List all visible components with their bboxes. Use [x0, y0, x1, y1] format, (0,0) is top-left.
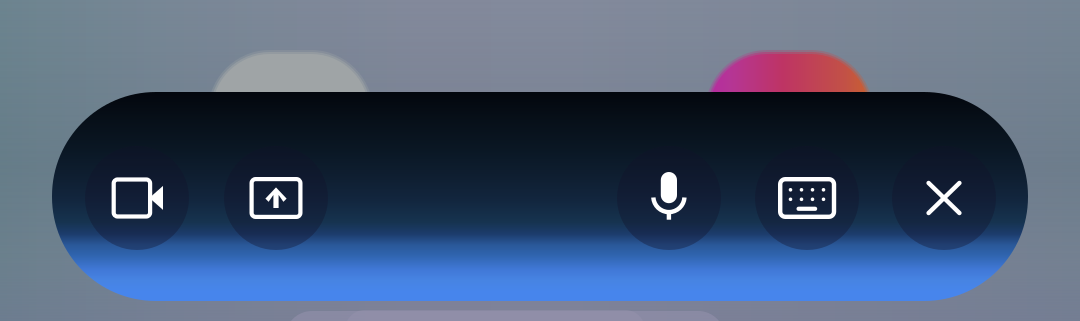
button[interactable]: Mute: [617, 146, 721, 250]
button[interactable]: Keyboard: [755, 146, 859, 250]
button[interactable]: Share screen: [224, 146, 328, 250]
button[interactable]: Camera: [85, 146, 189, 250]
button[interactable]: Leave call: [892, 146, 996, 250]
